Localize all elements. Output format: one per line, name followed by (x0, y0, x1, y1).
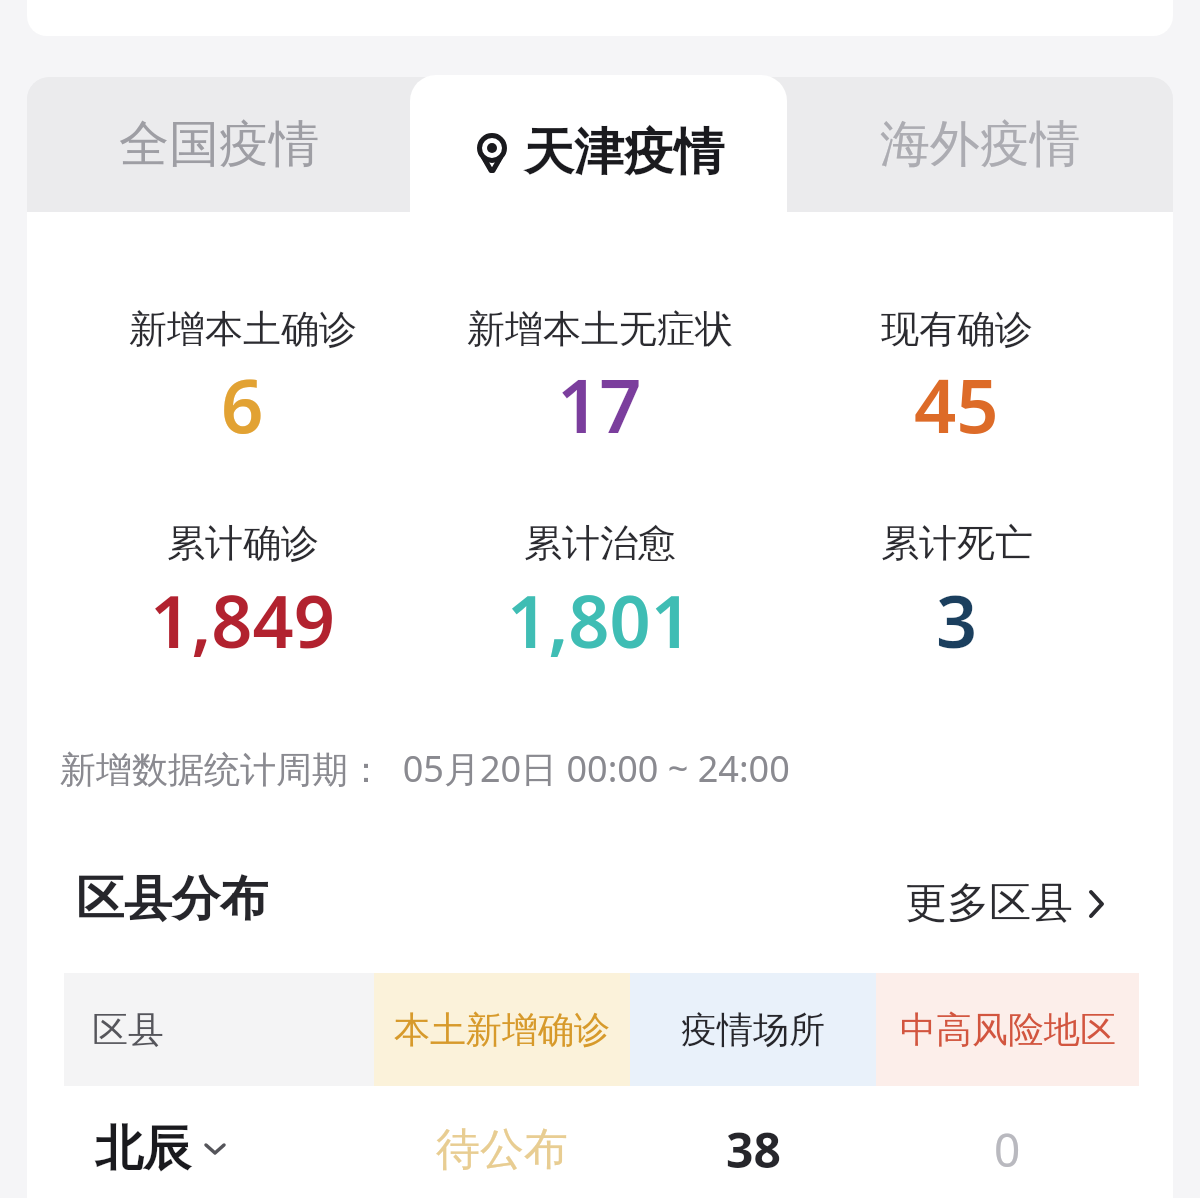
staticText: 新增数据统计周期： 05月20日 00:00 ~ 24:00 (60, 744, 790, 793)
button[interactable]: 中高风险地区 (876, 973, 1139, 1086)
staticText: 更多区县 (905, 877, 1073, 930)
staticText: 累计治愈 (524, 519, 676, 567)
staticText: 17 (557, 354, 642, 455)
button[interactable]: 北辰 (64, 1108, 374, 1190)
staticText: 1,849 (150, 571, 335, 669)
staticText: 38 (726, 1117, 781, 1182)
staticText: 区县分布 (76, 869, 268, 929)
staticText: 新增本土无症状 (467, 305, 733, 353)
staticText: 累计死亡 (881, 519, 1033, 567)
button[interactable]: 疫情场所 (630, 973, 876, 1086)
button[interactable]: 全国疫情 (27, 77, 410, 212)
staticText: 区县 (92, 1007, 164, 1052)
button[interactable]: 海外疫情 (787, 77, 1173, 212)
staticText: 6 (221, 354, 264, 455)
button[interactable]: 区县 (64, 973, 374, 1086)
staticText: 待公布 (436, 1122, 568, 1177)
staticText: 累计确诊 (167, 519, 319, 567)
staticText: 1,801 (507, 571, 692, 669)
staticText: 天津疫情 (524, 121, 724, 184)
staticText: 疫情场所 (681, 1007, 825, 1052)
button[interactable]: 天津疫情 (410, 75, 787, 215)
staticText: 中高风险地区 (900, 1007, 1116, 1052)
staticText: 北辰 (95, 1119, 191, 1179)
staticText: 新增本土确诊 (129, 305, 357, 353)
staticText: 45 (914, 354, 999, 455)
staticText: 0 (994, 1118, 1021, 1181)
staticText: 全国疫情 (119, 113, 319, 176)
staticText: 本土新增确诊 (394, 1007, 610, 1052)
staticText: 海外疫情 (880, 113, 1080, 176)
staticText: 3 (936, 571, 978, 669)
button[interactable]: 更多区县 (905, 877, 1105, 930)
button[interactable]: 本土新增确诊 (374, 973, 630, 1086)
staticText: 现有确诊 (881, 305, 1033, 353)
